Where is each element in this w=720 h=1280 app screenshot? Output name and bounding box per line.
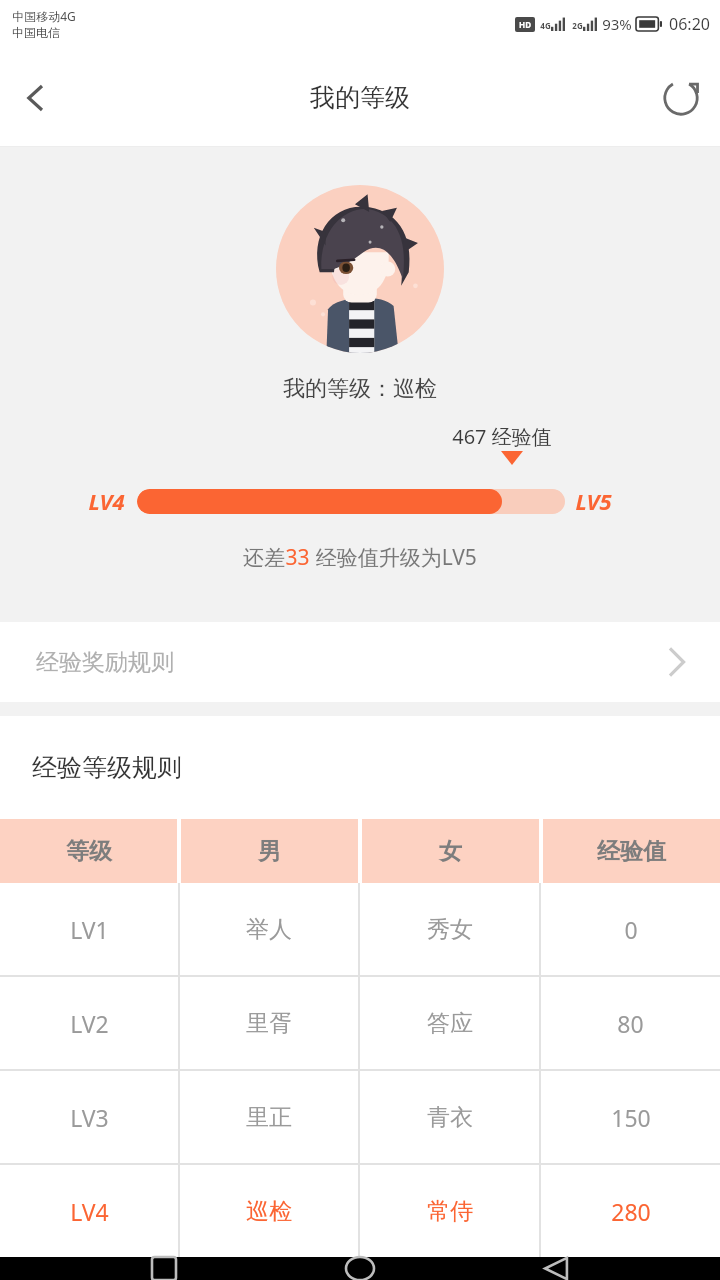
staticText: 我的等级 bbox=[310, 82, 410, 113]
staticText: HD bbox=[519, 19, 531, 30]
button[interactable]: Refresh bbox=[642, 59, 720, 137]
staticText: 中国移动4G bbox=[12, 8, 76, 24]
staticText: 06:20 bbox=[669, 13, 710, 35]
staticText: 等级 bbox=[66, 837, 112, 866]
staticText: 巡检 bbox=[246, 1197, 292, 1226]
staticText: 男 bbox=[258, 837, 281, 866]
staticText: 中国电信 bbox=[12, 25, 60, 40]
button[interactable]: Back bbox=[524, 1257, 588, 1280]
button[interactable]: Home bbox=[328, 1257, 392, 1280]
staticText: 2G bbox=[572, 20, 583, 31]
staticText: LV2 bbox=[70, 1008, 109, 1039]
button[interactable]: 经验奖励规则 bbox=[0, 622, 720, 702]
staticText: 青衣 bbox=[427, 1103, 473, 1132]
staticText: 80 bbox=[617, 1008, 644, 1039]
staticText: LV4 bbox=[88, 486, 125, 516]
staticText: 280 bbox=[611, 1196, 651, 1227]
staticText: 常侍 bbox=[427, 1197, 473, 1226]
staticText: 467 经验值 bbox=[452, 423, 552, 450]
staticText: LV5 bbox=[575, 486, 612, 516]
staticText: 里胥 bbox=[246, 1009, 292, 1038]
staticText: 里正 bbox=[246, 1103, 292, 1132]
staticText: 我的等级：巡检 bbox=[283, 375, 437, 403]
staticText: 经验奖励规则 bbox=[36, 648, 174, 677]
staticText: 0 bbox=[624, 914, 638, 945]
staticText: 举人 bbox=[246, 915, 292, 944]
staticText: 秀女 bbox=[427, 915, 473, 944]
staticText: 女 bbox=[439, 837, 462, 866]
staticText: LV4 bbox=[70, 1196, 109, 1227]
staticText: 经验值升级为LV5 bbox=[310, 543, 477, 572]
staticText: 150 bbox=[611, 1102, 651, 1133]
staticText: 经验等级规则 bbox=[32, 752, 182, 783]
staticText: 33 bbox=[285, 543, 310, 572]
staticText: 经验值 bbox=[597, 837, 666, 866]
staticText: LV3 bbox=[70, 1102, 109, 1133]
staticText: 93% bbox=[602, 14, 632, 34]
button[interactable]: Back bbox=[0, 62, 72, 134]
staticText: 4G bbox=[540, 20, 551, 31]
button[interactable]: Recents bbox=[132, 1257, 196, 1280]
staticText: LV1 bbox=[70, 914, 109, 945]
staticText: 还差 bbox=[243, 545, 285, 571]
staticText: 答应 bbox=[427, 1009, 473, 1038]
